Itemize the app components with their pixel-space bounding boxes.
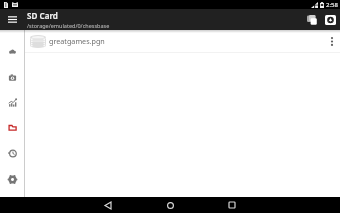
- button[interactable]: greatgames.pgn: [25, 30, 340, 52]
- button[interactable]: Recent: [0, 142, 24, 164]
- button[interactable]: Cloud storage: [0, 40, 24, 62]
- button[interactable]: Statistics: [0, 91, 24, 113]
- button[interactable]: Open navigation drawer: [0, 9, 24, 30]
- staticText: greatgames.pgn: [49, 36, 105, 46]
- button[interactable]: Files: [0, 116, 24, 138]
- button[interactable]: Home: [150, 197, 190, 213]
- staticText: SD Card: [27, 10, 58, 21]
- staticText: /storage/emulated/0/chessbase: [27, 22, 110, 29]
- button[interactable]: Copy: [302, 9, 321, 30]
- button[interactable]: More options: [324, 30, 340, 52]
- button[interactable]: SD card: [321, 9, 340, 30]
- button[interactable]: Images: [0, 66, 24, 88]
- button[interactable]: Settings: [0, 168, 24, 190]
- button[interactable]: Back: [88, 197, 128, 213]
- staticText: 2:58: [326, 1, 338, 9]
- button[interactable]: Recent apps: [212, 197, 252, 213]
